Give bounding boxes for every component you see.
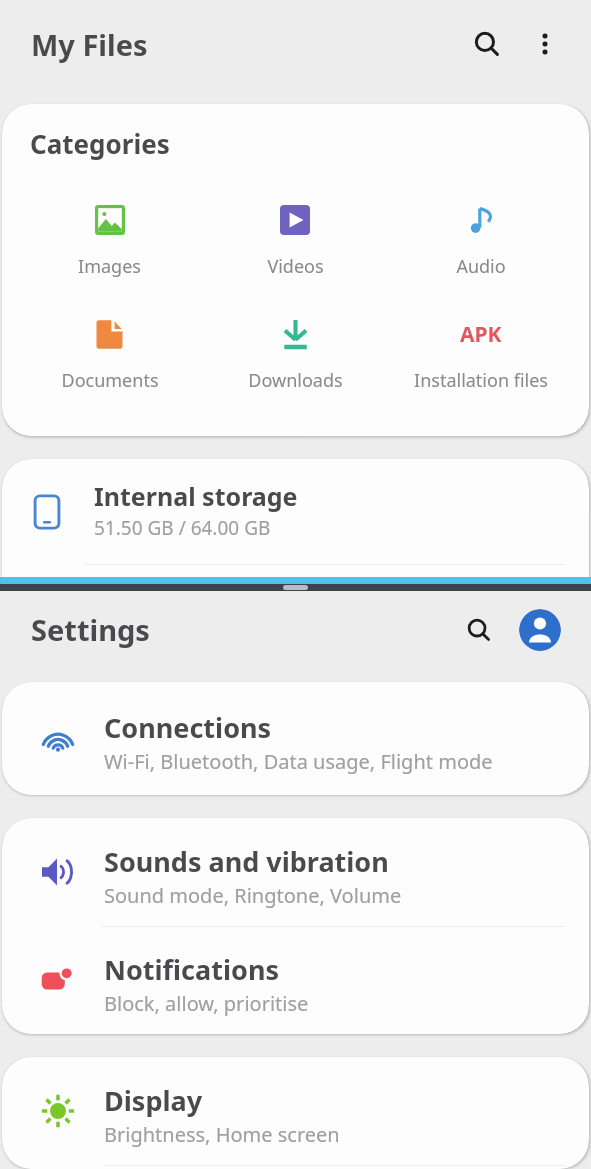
button[interactable]: Display: [2, 1057, 589, 1165]
staticText: Wi-Fi, Bluetooth, Data usage, Flight mod…: [104, 748, 493, 775]
staticText: My Files: [31, 25, 148, 64]
staticText: APK: [460, 320, 502, 349]
button[interactable]: More options: [521, 20, 569, 68]
staticText: Images: [78, 254, 141, 279]
staticText: Categories: [30, 126, 170, 161]
button[interactable]: Connections: [2, 682, 589, 795]
staticText: Documents: [61, 368, 159, 393]
button[interactable]: Downloads: [202, 302, 388, 416]
button[interactable]: Search settings: [457, 608, 501, 652]
staticText: Notifications: [104, 951, 279, 988]
staticText: Brightness, Home screen: [104, 1121, 340, 1148]
staticText: Videos: [267, 254, 324, 279]
button[interactable]: Audio: [388, 188, 574, 302]
button[interactable]: Videos: [202, 188, 388, 302]
button[interactable]: Internal storage: [2, 459, 589, 564]
staticText: Downloads: [248, 368, 343, 393]
button[interactable]: Search: [463, 20, 511, 68]
staticText: Sound mode, Ringtone, Volume: [104, 882, 402, 909]
staticText: Block, allow, prioritise: [104, 990, 309, 1017]
button[interactable]: Sounds and vibration: [2, 818, 589, 926]
staticText: Connections: [104, 709, 272, 746]
staticText: Display: [104, 1082, 203, 1119]
button[interactable]: Images: [17, 188, 202, 302]
staticText: Installation files: [414, 368, 548, 393]
staticText: 51.50 GB / 64.00 GB: [94, 515, 271, 541]
staticText: Internal storage: [94, 479, 298, 513]
staticText: Sounds and vibration: [104, 843, 389, 880]
button[interactable]: APK: [388, 302, 574, 416]
button[interactable]: Documents: [17, 302, 202, 416]
button[interactable]: Notifications: [2, 927, 589, 1034]
button[interactable]: Samsung account: [519, 609, 561, 651]
staticText: Audio: [456, 254, 506, 279]
staticText: Settings: [31, 610, 150, 649]
